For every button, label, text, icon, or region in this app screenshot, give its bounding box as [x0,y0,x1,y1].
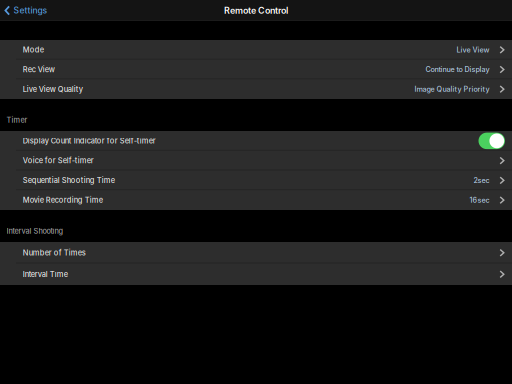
staticText: Mode [23,45,44,54]
staticText: Interval Shooting [7,227,64,235]
staticText: 16sec [469,196,489,204]
staticText: Rec View [23,65,55,74]
button[interactable]: Live View Quality [0,79,512,99]
button[interactable]: Settings [0,2,48,19]
staticText: 2sec [473,176,489,185]
staticText: Timer [7,116,28,124]
staticText: Voice for Self-timer [23,156,94,165]
staticText: Sequential Shooting Time [23,176,115,185]
staticText: Interval Time [23,270,68,279]
button[interactable]: Voice for Self-timer [0,151,512,171]
staticText: Live View Quality [23,85,83,94]
button[interactable]: Mode [0,40,512,60]
staticText: Display Count Indicator for Self-timer [23,136,156,145]
staticText: Remote Control [224,5,288,16]
button[interactable]: Display Count Indicator for Self-timer [0,131,512,151]
button[interactable]: Number of Times [0,242,512,263]
button[interactable]: Movie Recording Time [0,190,512,210]
staticText: Settings [14,5,48,16]
button[interactable]: Interval Time [0,263,512,285]
button[interactable]: Sequential Shooting Time [0,170,512,190]
staticText: Image Quality Priority [414,85,489,93]
staticText: Continue to Display [425,65,489,74]
staticText: Live View [456,45,489,54]
button[interactable]: Rec View [0,60,512,79]
staticText: Movie Recording Time [23,196,103,205]
staticText: Number of Times [23,248,86,257]
